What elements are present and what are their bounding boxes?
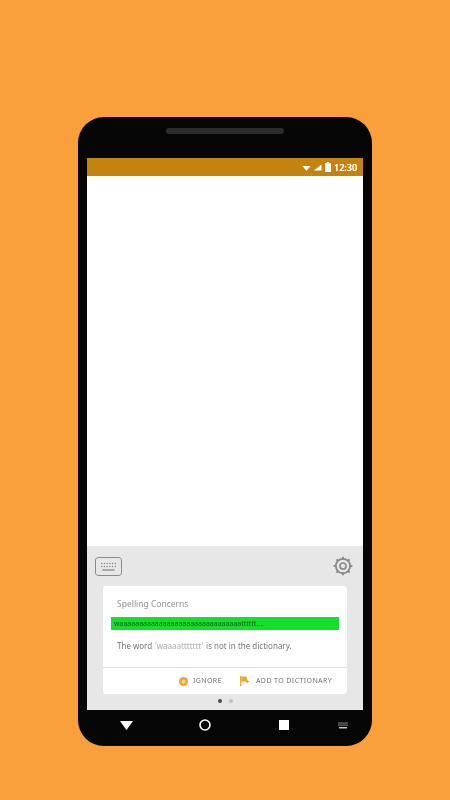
staticText: IGNORE — [193, 676, 222, 686]
staticText: 'waaaattttttt' — [155, 640, 204, 651]
button[interactable]: Settings — [331, 554, 355, 578]
staticText: ADD TO DICTIONARY — [256, 676, 333, 686]
button[interactable]: ADD TO DICTIONARY — [236, 673, 337, 689]
staticText: 12:30 — [334, 161, 358, 173]
staticText: The word — [117, 640, 155, 651]
staticText: Spelling Concerns — [117, 598, 189, 610]
button[interactable]: Keyboard layout — [323, 710, 363, 740]
button[interactable]: Hide keyboard — [87, 710, 165, 740]
button[interactable]: Switch keyboard — [95, 557, 122, 576]
staticText: is not in the dictionary. — [204, 640, 292, 651]
button[interactable]: Home — [165, 710, 244, 740]
staticText: waaaaaaaaaaaaaaaaaaaaaaaaaaaaaaatttttt..… — [114, 619, 264, 629]
button[interactable]: IGNORE — [175, 673, 226, 689]
button[interactable]: Recent apps — [244, 710, 323, 740]
